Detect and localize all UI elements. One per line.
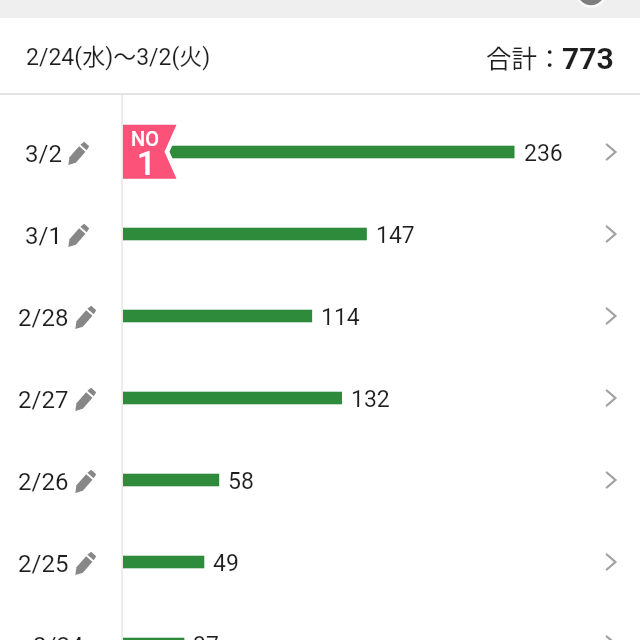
other: Edit	[71, 469, 98, 496]
button[interactable]: 2/27	[0, 357, 640, 439]
staticText: 49	[213, 550, 239, 577]
button[interactable]: 2/26	[0, 439, 640, 521]
other: Edit	[64, 141, 91, 168]
button[interactable]: 3/1	[0, 193, 640, 275]
staticText: NO	[131, 127, 159, 150]
button[interactable]: 2/24	[0, 603, 640, 640]
staticText: 2/28	[18, 304, 69, 332]
staticText: 合計：	[486, 38, 563, 75]
staticText: 1	[137, 144, 156, 183]
other: Edit	[64, 223, 91, 250]
staticText: 3/1	[25, 222, 62, 250]
staticText: 2/27	[18, 386, 69, 414]
staticText: 2/24	[33, 632, 84, 640]
staticText: 2/26	[18, 468, 69, 496]
staticText: 773	[562, 41, 614, 76]
staticText: 2/25	[18, 550, 69, 578]
button[interactable]: 2/25	[0, 521, 640, 603]
staticText: 114	[321, 304, 360, 331]
other: Edit	[71, 387, 98, 414]
staticText: 147	[376, 222, 415, 249]
staticText: 2/24(水)〜3/2(火)	[26, 38, 211, 71]
other: Edit	[71, 305, 98, 332]
staticText: 132	[351, 386, 390, 413]
staticText: 236	[524, 140, 563, 167]
other: Edit	[71, 551, 98, 578]
staticText: 37	[193, 632, 219, 640]
staticText: 58	[228, 468, 254, 495]
staticText: 3/2	[25, 140, 62, 168]
button[interactable]: 3/2	[0, 111, 640, 193]
button[interactable]: 2/28	[0, 275, 640, 357]
